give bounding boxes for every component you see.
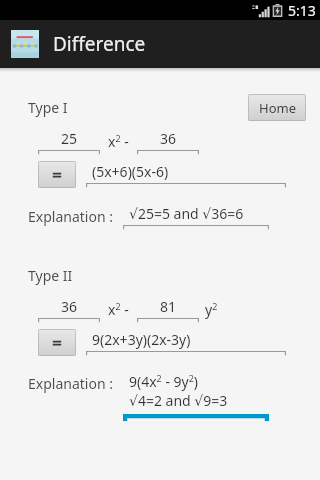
button[interactable]: Calculate xyxy=(38,329,76,356)
staticText: 5:13 xyxy=(288,1,316,20)
staticText: 9(4x2 - 9y2) xyxy=(129,372,199,391)
button[interactable]: 81 xyxy=(137,297,199,323)
staticText: Explanation : xyxy=(28,374,113,393)
staticText: 9(2x+3y)(2x-3y) xyxy=(92,330,191,349)
staticText: 36 xyxy=(61,297,78,316)
button[interactable]: 9(2x+3y)(2x-3y) xyxy=(86,330,286,356)
button[interactable]: 25 xyxy=(38,129,100,155)
staticText: √4=2 and √9=3 xyxy=(129,391,228,410)
staticText: 25 xyxy=(61,129,78,148)
staticText: x2 - xyxy=(108,300,129,319)
staticText: Explanation : xyxy=(28,207,113,226)
button[interactable]: 36 xyxy=(38,297,100,323)
staticText: Difference xyxy=(53,31,146,57)
staticText: y2 xyxy=(205,300,218,319)
staticText: Type I xyxy=(28,98,68,117)
staticText: Type II xyxy=(28,266,73,285)
staticText: (5x+6)(5x-6) xyxy=(92,162,169,181)
staticText: √25=5 and √36=6 xyxy=(129,204,244,223)
staticText: 81 xyxy=(160,297,177,316)
button[interactable]: √25=5 and √36=6 xyxy=(123,204,269,230)
button[interactable]: Calculate xyxy=(38,161,76,188)
staticText: Home xyxy=(259,99,296,117)
button[interactable]: 9(4x2 - 9y2) xyxy=(123,372,269,421)
staticText: 36 xyxy=(160,129,177,148)
staticText: x2 - xyxy=(108,132,129,151)
button[interactable]: (5x+6)(5x-6) xyxy=(86,162,286,188)
button[interactable]: 36 xyxy=(137,129,199,155)
button[interactable]: Home xyxy=(248,94,306,121)
